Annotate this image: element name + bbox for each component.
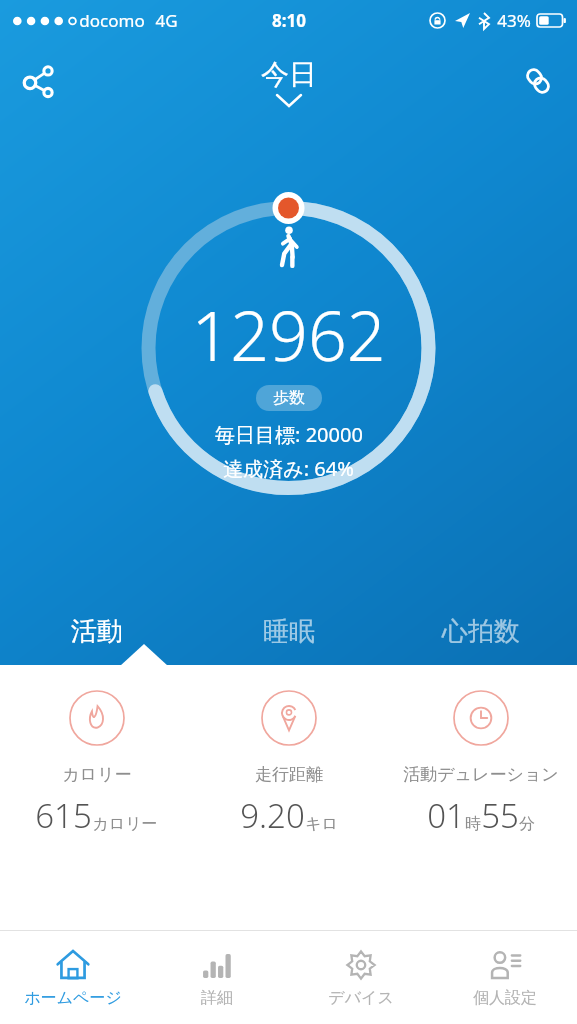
staticText: デバイス [328, 988, 394, 1008]
staticText: 分 [519, 814, 535, 834]
button[interactable]: 歩数 [273, 388, 305, 408]
staticText: ホームページ [24, 988, 122, 1008]
button[interactable]: 詳細 [145, 931, 289, 1024]
staticText: 8:10 [272, 9, 306, 32]
button[interactable]: ホームページ [0, 931, 145, 1024]
staticText: 615 [35, 793, 92, 838]
button[interactable]: 活動デュレーション [385, 690, 577, 838]
button[interactable]: 活動 [0, 598, 193, 664]
button[interactable]: Link device [509, 52, 567, 110]
staticText: docomo [79, 9, 145, 32]
staticText: 詳細 [201, 988, 233, 1008]
staticText: カロリー [62, 764, 132, 785]
staticText: 55 [481, 793, 519, 838]
button[interactable]: 心拍数 [385, 598, 577, 664]
staticText: 時 [465, 814, 481, 834]
button[interactable]: 個人設定 [433, 931, 577, 1024]
staticText: 活動 [71, 615, 123, 648]
staticText: 歩数 [273, 388, 305, 408]
button[interactable]: 睡眠 [193, 598, 385, 664]
staticText: 今日 [261, 57, 317, 92]
staticText: 9.20 [240, 793, 305, 838]
button[interactable]: 走行距離 [193, 690, 385, 838]
staticText: 心拍数 [442, 615, 520, 648]
staticText: 睡眠 [263, 615, 315, 648]
staticText: 12962 [191, 288, 386, 381]
staticText: 走行距離 [255, 764, 323, 785]
button[interactable]: デバイス [289, 931, 433, 1024]
staticText: 01 [427, 793, 465, 838]
staticText: 個人設定 [473, 988, 537, 1008]
staticText: 活動デュレーション [403, 764, 559, 785]
button[interactable]: カロリー [0, 690, 193, 838]
button[interactable]: 今日 [261, 57, 317, 106]
staticText: 4G [155, 9, 178, 32]
staticText: 達成済み: 64% [223, 455, 354, 482]
staticText: 毎日目標: 20000 [215, 421, 363, 448]
staticText: キロ [305, 814, 338, 834]
staticText: 43% [497, 9, 531, 32]
button[interactable]: Share [10, 52, 68, 110]
staticText: カロリー [92, 814, 158, 834]
